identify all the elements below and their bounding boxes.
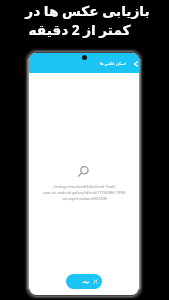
- staticText: /storage/emulated/0/Android/.Trash/ com.…: [43, 184, 126, 201]
- staticText: کمتر از 2 دقیقه: [28, 20, 131, 39]
- staticText: اسکن عکس ها: [100, 61, 126, 67]
- button[interactable]: توقف: [66, 274, 102, 289]
- staticText: بازیابی عکس ها در: [25, 1, 150, 20]
- staticText: توقف: [82, 280, 90, 284]
- button[interactable]: Back: [130, 58, 139, 70]
